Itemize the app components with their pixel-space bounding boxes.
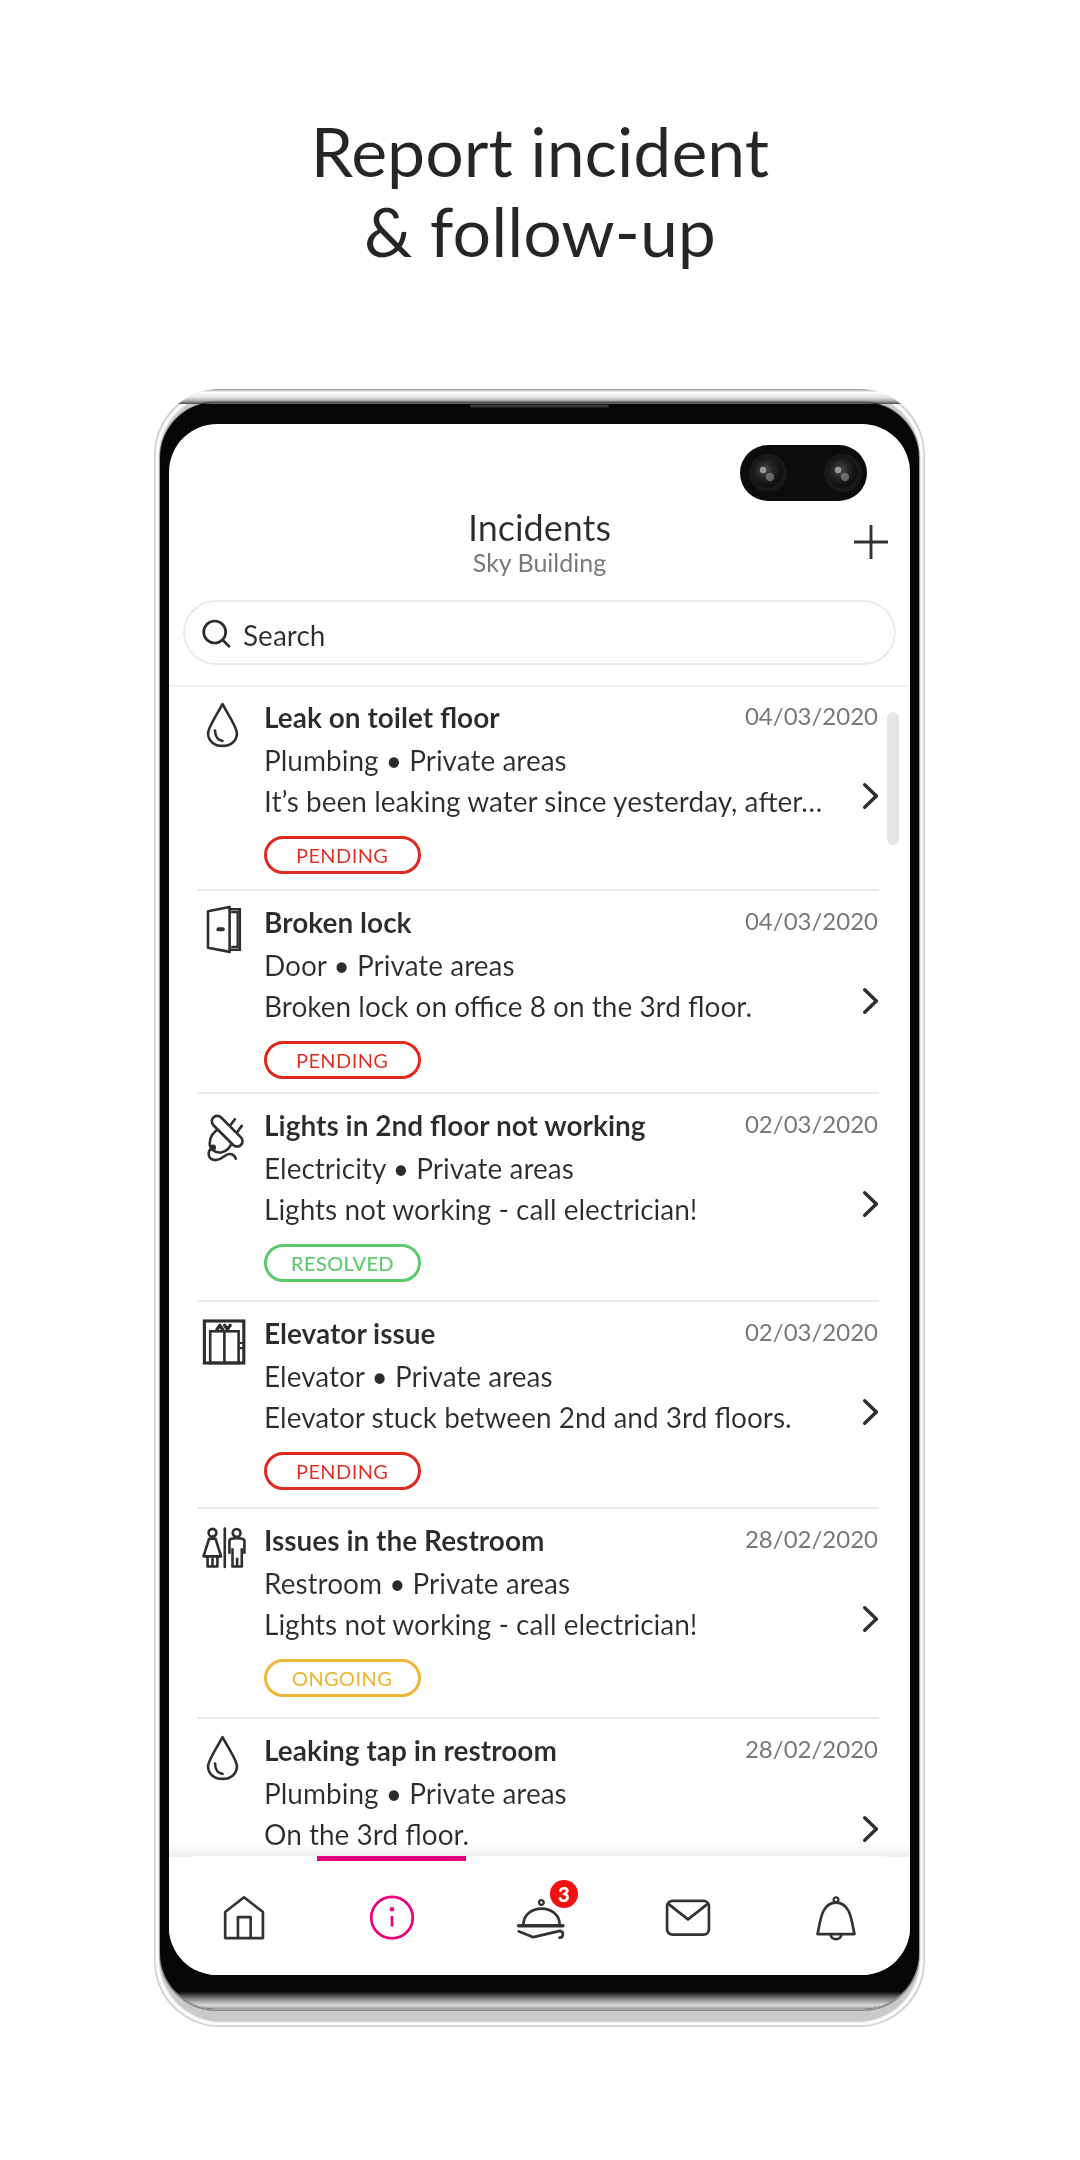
- staticText: 04/03/2020: [599, 701, 878, 730]
- staticText: Leaking tap in restroom: [264, 1733, 557, 1767]
- staticText: Broken lock on office 8 on the 3rd floor…: [264, 989, 874, 1023]
- staticText: Search: [243, 618, 326, 652]
- staticText: PENDING: [296, 1459, 389, 1483]
- staticText: Leak on toilet floor: [264, 700, 500, 734]
- staticText: Restroom • Private areas: [264, 1566, 571, 1600]
- button[interactable]: Services: [466, 1856, 614, 1975]
- staticText: Report incident: [0, 110, 1080, 192]
- button[interactable]: Lights in 2nd floor not working: [169, 1094, 910, 1302]
- staticText: PENDING: [296, 1876, 389, 1900]
- staticText: Elevator issue: [264, 1316, 436, 1350]
- staticText: Elevator • Private areas: [264, 1359, 553, 1393]
- staticText: 28/02/2020: [599, 1734, 878, 1763]
- staticText: Door • Private areas: [264, 948, 515, 982]
- staticText: Incidents: [169, 505, 910, 548]
- staticText: 02/03/2020: [599, 1109, 878, 1138]
- staticText: 28/02/2020: [599, 1524, 878, 1553]
- staticText: 04/03/2020: [599, 906, 878, 935]
- button[interactable]: Search: [183, 600, 896, 665]
- staticText: RESOLVED: [291, 1251, 394, 1275]
- staticText: Electricity • Private areas: [264, 1151, 574, 1185]
- staticText: Issues in the Restroom: [264, 1523, 545, 1557]
- button[interactable]: Incidents: [318, 1856, 466, 1975]
- staticText: 3: [558, 1882, 570, 1906]
- staticText: Lights not working - call electrician!: [264, 1607, 874, 1641]
- button[interactable]: Elevator issue: [169, 1302, 910, 1509]
- staticText: & follow-up: [0, 190, 1080, 272]
- staticText: Elevator stuck between 2nd and 3rd floor…: [264, 1400, 874, 1434]
- staticText: Lights in 2nd floor not working: [264, 1108, 646, 1142]
- button[interactable]: Issues in the Restroom: [169, 1509, 910, 1719]
- button[interactable]: Add incident: [839, 510, 903, 574]
- button[interactable]: Leak on toilet floor: [169, 686, 910, 891]
- staticText: On the 3rd floor.: [264, 1817, 874, 1851]
- button[interactable]: Messages: [614, 1856, 762, 1975]
- button[interactable]: Broken lock: [169, 891, 910, 1094]
- staticText: It’s been leaking water since yesterday,…: [264, 784, 874, 818]
- staticText: Lights not working - call electrician!: [264, 1192, 874, 1226]
- staticText: Plumbing • Private areas: [264, 743, 567, 777]
- staticText: Sky Building: [169, 547, 910, 577]
- button[interactable]: Home: [169, 1856, 318, 1975]
- button[interactable]: Leaking tap in restroom: [169, 1719, 910, 1934]
- button[interactable]: Notifications: [762, 1856, 910, 1975]
- staticText: PENDING: [296, 843, 389, 867]
- staticText: PENDING: [296, 1048, 389, 1072]
- staticText: ONGOING: [292, 1666, 393, 1690]
- staticText: 02/03/2020: [599, 1317, 878, 1346]
- staticText: Broken lock: [264, 905, 412, 939]
- staticText: Plumbing • Private areas: [264, 1776, 567, 1810]
